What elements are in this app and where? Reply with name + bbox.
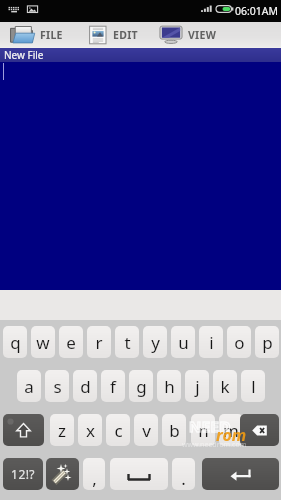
staticText: o (234, 331, 245, 354)
button[interactable]: b (162, 414, 186, 446)
button[interactable]: t (115, 326, 139, 358)
staticText: c (114, 419, 123, 442)
staticText: u (178, 331, 189, 354)
staticText: z (58, 419, 66, 442)
staticText: EDIT (113, 28, 138, 42)
button[interactable]: Backspace (240, 414, 279, 446)
button[interactable]: , (83, 458, 105, 490)
button[interactable]: f (101, 370, 125, 402)
staticText: p (262, 331, 273, 354)
staticText: k (220, 375, 230, 398)
button[interactable]: g (129, 370, 153, 402)
staticText: v (142, 419, 151, 442)
staticText: e (66, 331, 76, 354)
button[interactable]: Shift (3, 414, 44, 446)
staticText: l (251, 375, 256, 398)
staticText: www.needrom.com (182, 440, 247, 450)
button[interactable]: o (227, 326, 251, 358)
staticText: y (151, 331, 160, 354)
button[interactable]: c (106, 414, 130, 446)
button[interactable]: New File (0, 48, 281, 62)
staticText: w (36, 331, 50, 354)
button[interactable]: u (171, 326, 195, 358)
staticText: q (10, 331, 21, 354)
staticText: x (86, 419, 95, 442)
button[interactable]: Settings (46, 458, 79, 490)
button[interactable]: Space (110, 458, 168, 490)
staticText: NEED (189, 416, 231, 436)
button[interactable]: VIEW (159, 22, 217, 47)
button[interactable]: i (199, 326, 223, 358)
staticText: rom (216, 424, 247, 446)
button[interactable]: h (157, 370, 181, 402)
button[interactable]: w (31, 326, 55, 358)
staticText: r (95, 331, 103, 354)
button[interactable]: Enter (202, 458, 279, 490)
staticText: 06:01AM (235, 4, 279, 18)
button[interactable]: y (143, 326, 167, 358)
button[interactable]: x (78, 414, 102, 446)
staticText: f (110, 375, 116, 398)
staticText: 12!? (11, 466, 35, 482)
button[interactable]: 12!? (3, 458, 43, 490)
button[interactable]: e (59, 326, 83, 358)
button[interactable]: m (219, 414, 243, 446)
staticText: s (53, 375, 62, 398)
button[interactable]: l (241, 370, 265, 402)
button[interactable]: z (50, 414, 74, 446)
button[interactable]: s (45, 370, 69, 402)
staticText: n (198, 419, 209, 442)
staticText: m (223, 419, 239, 442)
button[interactable]: j (185, 370, 209, 402)
staticText: VIEW (188, 28, 217, 42)
staticText: , (92, 467, 97, 490)
staticText: h (164, 375, 175, 398)
button[interactable]: n (191, 414, 215, 446)
button[interactable]: r (87, 326, 111, 358)
staticText: g (136, 375, 147, 398)
button[interactable]: EDIT (88, 22, 138, 47)
button[interactable]: d (73, 370, 97, 402)
button[interactable]: p (255, 326, 279, 358)
staticText: d (80, 375, 91, 398)
button[interactable]: . (172, 458, 195, 490)
button[interactable]: a (17, 370, 41, 402)
staticText: New File (4, 48, 44, 62)
button[interactable]: q (3, 326, 27, 358)
staticText: i (209, 331, 214, 354)
staticText: t (124, 331, 131, 354)
staticText: . (181, 467, 186, 490)
staticText: FILE (40, 28, 63, 42)
staticText: b (169, 419, 180, 442)
button[interactable]: v (134, 414, 158, 446)
staticText: a (24, 375, 34, 398)
button[interactable]: FILE (9, 22, 63, 47)
staticText: j (195, 375, 200, 398)
button[interactable]: k (213, 370, 237, 402)
